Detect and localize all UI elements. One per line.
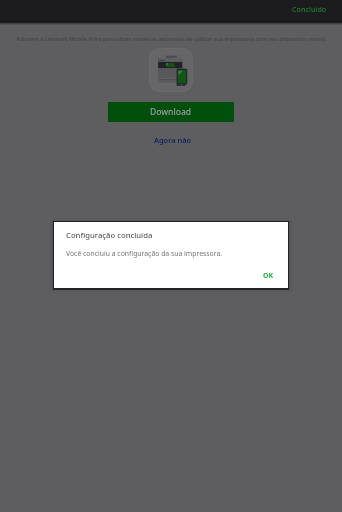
button[interactable]: Lexmark Mobile Print xyxy=(149,48,193,92)
staticText: Agora não xyxy=(154,135,192,145)
staticText: Adicione o Lexmark Mobile Print para obt… xyxy=(16,35,327,43)
button[interactable]: Concluído xyxy=(276,1,342,21)
staticText: OK xyxy=(263,271,274,280)
staticText: Concluído xyxy=(292,4,327,14)
button[interactable]: OK xyxy=(247,264,288,288)
staticText: Download xyxy=(150,106,192,118)
button[interactable]: Download xyxy=(108,102,234,122)
button[interactable]: Agora não xyxy=(148,132,198,148)
staticText: Você concluiu a configuração da sua impr… xyxy=(66,249,223,258)
staticText: Configuração concluída xyxy=(66,230,153,240)
